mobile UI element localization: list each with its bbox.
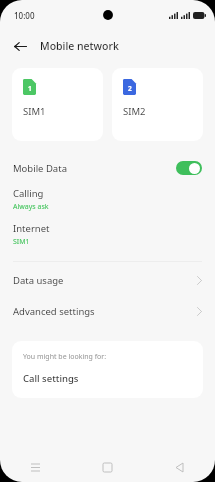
staticText: Mobile network [40, 39, 119, 53]
staticText: Always ask [13, 202, 49, 212]
button[interactable]: Internet [0, 217, 215, 252]
button[interactable]: Advanced settings [0, 296, 215, 327]
staticText: 10:00 [14, 10, 35, 21]
staticText: 2 [128, 84, 132, 93]
staticText: SIM1 [13, 237, 30, 247]
button[interactable]: 2 [112, 68, 203, 141]
button[interactable]: Calling [0, 182, 215, 217]
button[interactable]: Data usage [0, 265, 215, 296]
staticText: Calling [13, 187, 44, 200]
staticText: Call settings [23, 372, 79, 385]
staticText: 1 [28, 84, 32, 93]
button[interactable]: You might be looking for: [12, 341, 203, 398]
button[interactable]: Back [8, 34, 32, 58]
staticText: Advanced settings [13, 305, 197, 318]
button[interactable]: Recents [0, 452, 71, 482]
staticText: SIM2 [123, 105, 146, 118]
other: Mobile Data toggle [176, 161, 202, 175]
staticText: Internet [13, 222, 50, 235]
staticText: SIM1 [23, 105, 46, 118]
button[interactable]: Home [71, 452, 143, 482]
button[interactable]: 1 [12, 68, 103, 141]
button[interactable]: Mobile Data [0, 154, 215, 182]
staticText: Data usage [13, 274, 197, 287]
button[interactable]: Back [143, 452, 215, 482]
staticText: Mobile Data [13, 162, 176, 175]
staticText: You might be looking for: [23, 352, 107, 362]
